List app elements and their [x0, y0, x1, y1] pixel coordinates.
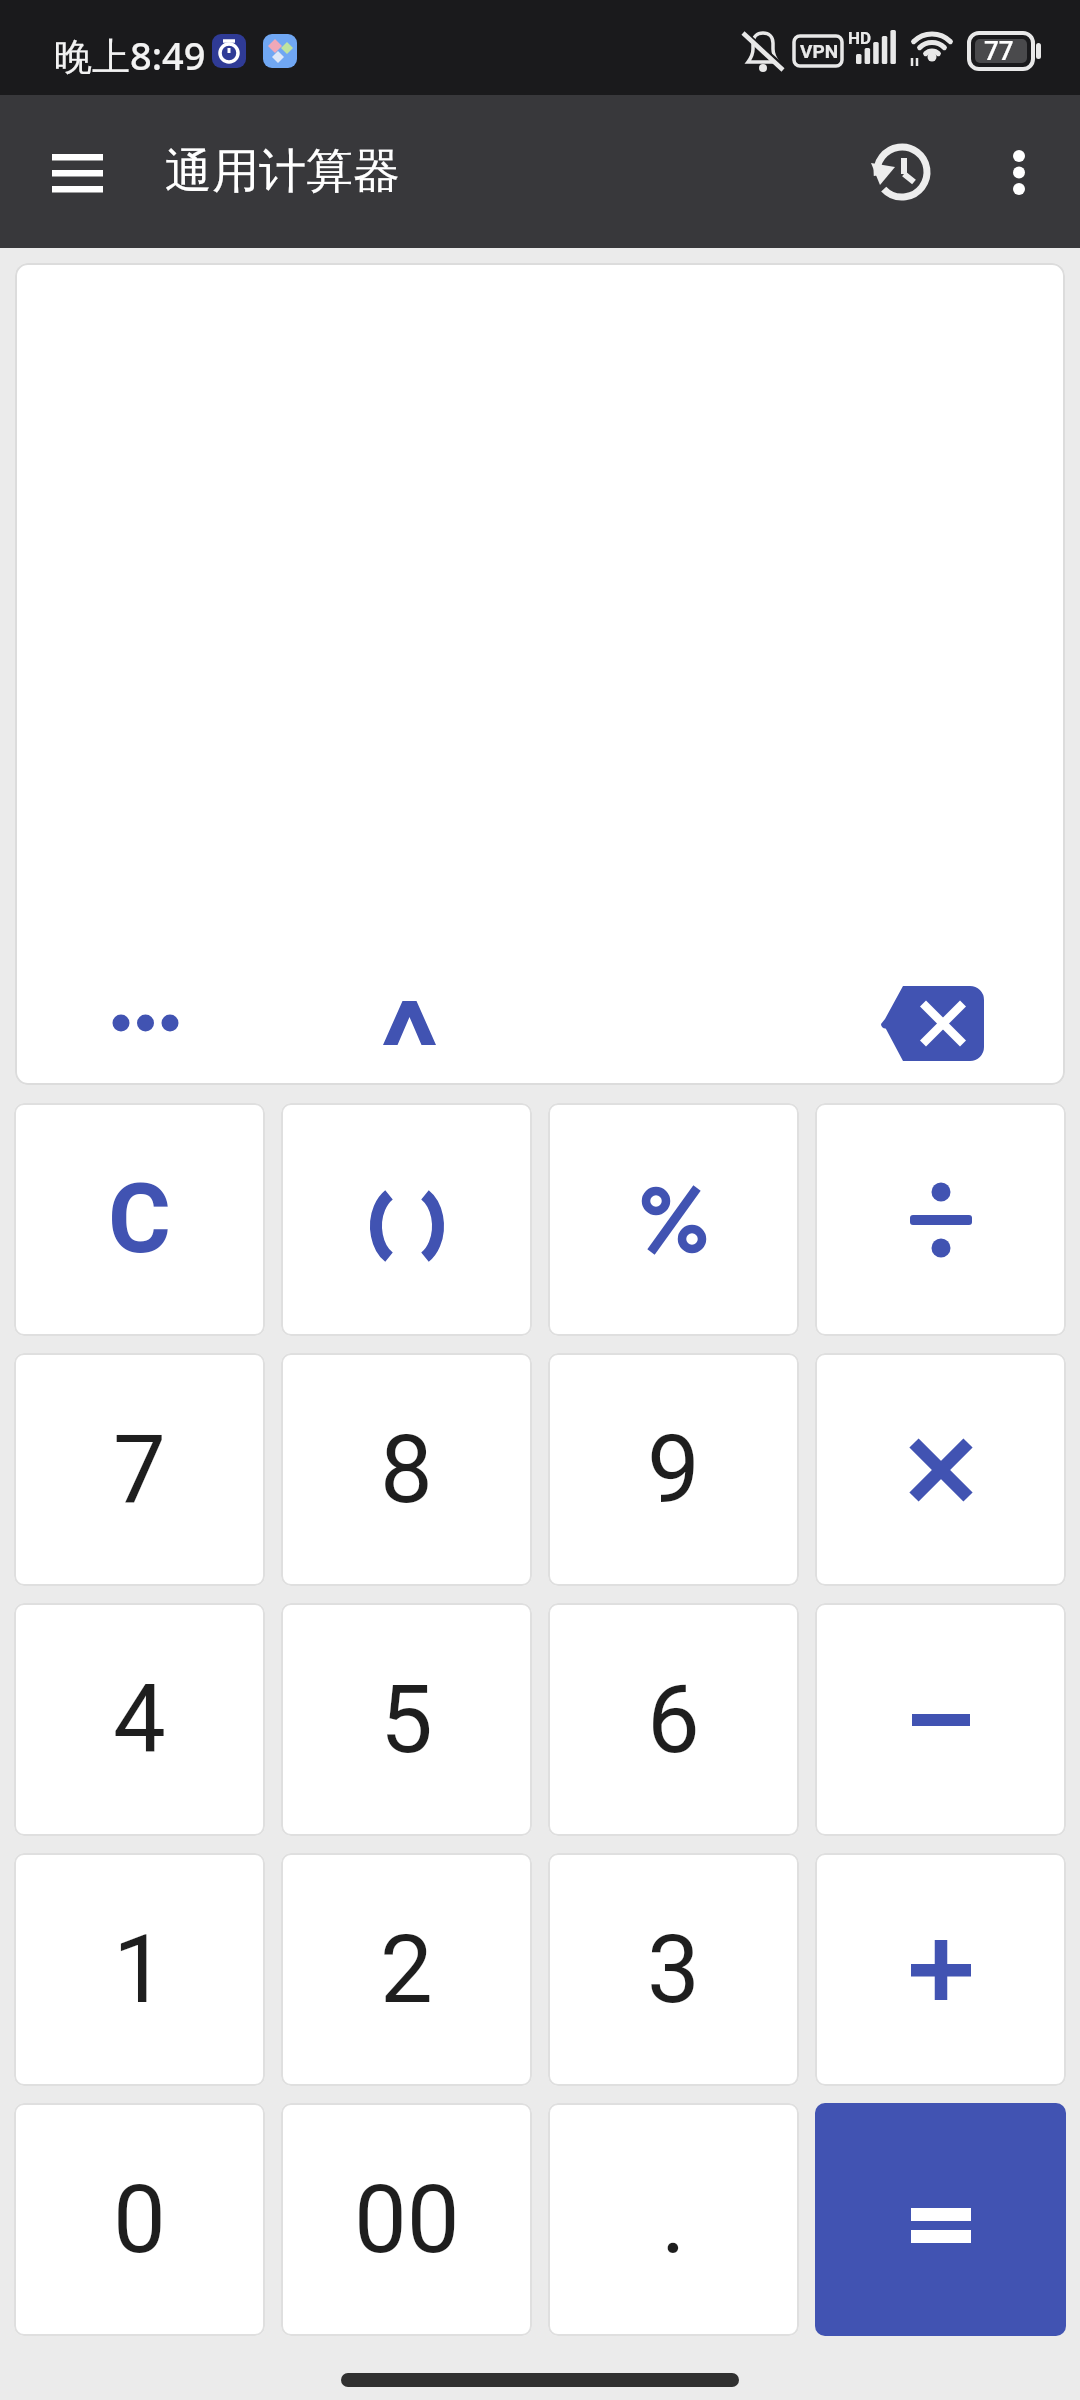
staticText: 00 — [354, 2165, 460, 2275]
button[interactable]: 4 — [14, 1603, 265, 1836]
staticText: 3 — [647, 1915, 700, 2025]
button[interactable] — [349, 963, 469, 1083]
button[interactable]: 7 — [14, 1353, 265, 1586]
staticText: C — [108, 1163, 171, 1276]
staticText: 晚上8:49 — [54, 29, 206, 81]
button[interactable]: 3 — [548, 1853, 799, 2086]
staticText: HD — [848, 28, 872, 48]
button[interactable]: 6 — [548, 1603, 799, 1836]
button[interactable]: 2 — [281, 1853, 532, 2086]
button[interactable] — [984, 133, 1054, 213]
staticText: . — [661, 2165, 686, 2275]
staticText: 0 — [113, 2165, 166, 2275]
button[interactable]: 0 — [14, 2103, 265, 2336]
button[interactable] — [860, 963, 1010, 1083]
button[interactable]: 8 — [281, 1353, 532, 1586]
button[interactable]: 5 — [281, 1603, 532, 1836]
staticText: 2 — [380, 1915, 433, 2025]
button[interactable] — [815, 1353, 1066, 1586]
button[interactable] — [863, 133, 943, 213]
staticText: 4 — [113, 1665, 166, 1775]
button[interactable] — [38, 140, 118, 206]
button[interactable] — [815, 2103, 1066, 2336]
button[interactable] — [815, 1103, 1066, 1336]
staticText: VPN — [800, 40, 839, 62]
button[interactable] — [548, 1103, 799, 1336]
staticText: 1 — [113, 1915, 166, 2025]
staticText: 7 — [113, 1415, 166, 1525]
button[interactable]: C — [14, 1103, 265, 1336]
staticText: 8 — [380, 1415, 433, 1525]
staticText: 9 — [647, 1415, 700, 1525]
button[interactable]: 1 — [14, 1853, 265, 2086]
button[interactable] — [281, 1103, 532, 1336]
button[interactable] — [85, 963, 205, 1083]
staticText: 77 — [984, 36, 1014, 66]
staticText: 通用计算器 — [165, 142, 400, 201]
button[interactable]: 00 — [281, 2103, 532, 2336]
button[interactable] — [815, 1853, 1066, 2086]
button[interactable] — [815, 1603, 1066, 1836]
staticText: 5 — [380, 1665, 433, 1775]
button[interactable]: 9 — [548, 1353, 799, 1586]
button[interactable]: . — [548, 2103, 799, 2336]
staticText: 6 — [647, 1665, 700, 1775]
